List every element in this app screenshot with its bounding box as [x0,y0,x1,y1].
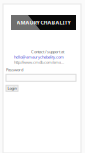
button[interactable]: Login [6,85,18,91]
staticText: hello@amaurychabality.com [14,54,64,60]
staticText: http://www.cmdb.com/amaury [14,60,64,65]
staticText: Contact / support at [31,49,64,54]
staticText: Login [7,86,16,91]
staticText: Password [6,67,23,72]
staticText: AMAURY CHABALITY [16,19,70,26]
button[interactable]: hello@amaurychabality.com [14,54,64,60]
